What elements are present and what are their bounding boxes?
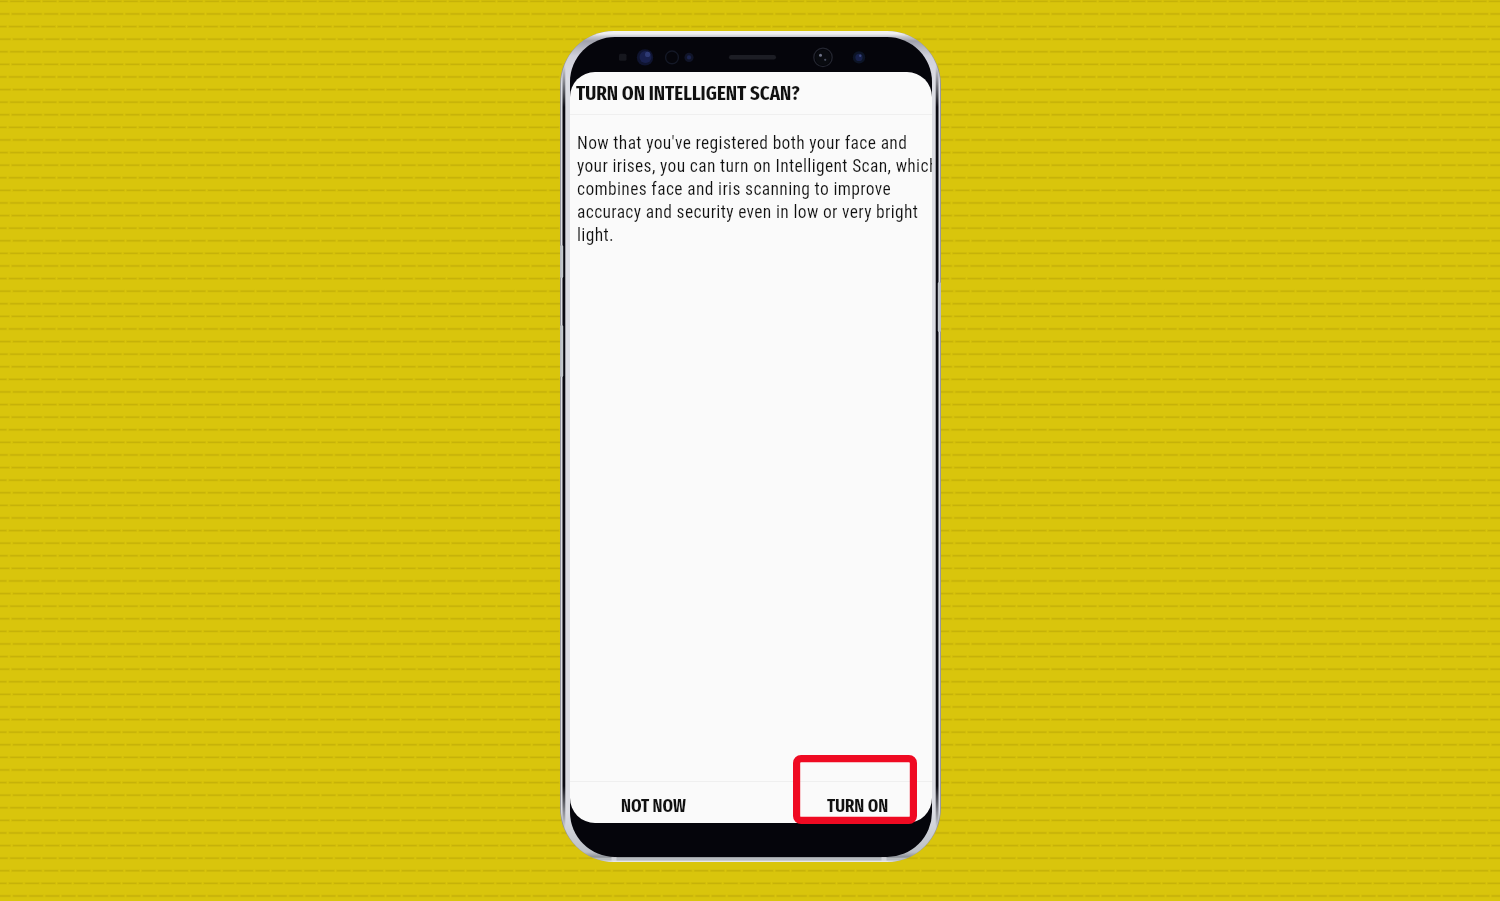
button[interactable]: TURN ON [796, 785, 919, 823]
staticText: TURN ON INTELLIGENT SCAN? [576, 81, 800, 106]
staticText: NOT NOW [621, 795, 686, 817]
button[interactable]: Turn On highlighted [793, 755, 917, 824]
staticText: TURN ON [827, 795, 889, 817]
staticText: Now that you've registered both your fac… [577, 133, 932, 245]
button[interactable]: NOT NOW [592, 785, 715, 823]
